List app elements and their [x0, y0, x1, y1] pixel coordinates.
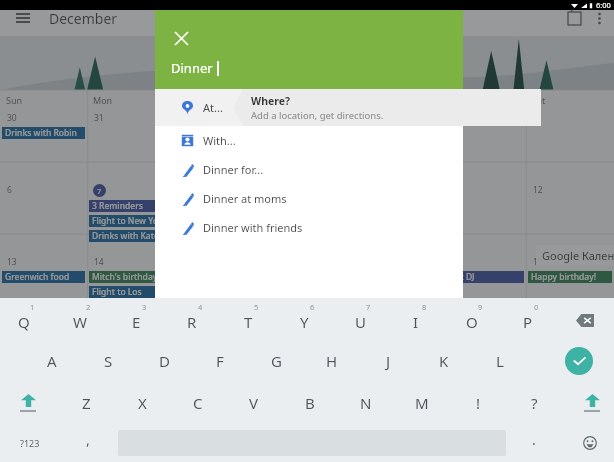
button[interactable]: With...: [155, 126, 463, 155]
staticText: B: [305, 393, 315, 413]
staticText: G: [271, 351, 282, 371]
staticText: Happy birthday!: [531, 271, 596, 283]
button[interactable]: Menu: [8, 3, 38, 33]
button[interactable]: ?123: [2, 424, 58, 462]
button[interactable]: Happy birthday!: [528, 271, 612, 283]
button[interactable]: G: [250, 340, 302, 382]
staticText: X: [138, 393, 147, 413]
button[interactable]: 3: [110, 300, 162, 340]
button[interactable]: Shift: [2, 382, 54, 424]
button[interactable]: At...: [155, 89, 463, 126]
button[interactable]: !: [452, 382, 504, 424]
button[interactable]: Flight to Los Angeles: [89, 286, 172, 298]
button[interactable]: 1: [0, 300, 50, 340]
button[interactable]: Enter: [551, 340, 607, 382]
button[interactable]: K: [418, 340, 470, 382]
button[interactable]: Close: [163, 20, 199, 56]
button[interactable]: V: [228, 382, 280, 424]
staticText: 12: [533, 184, 543, 196]
staticText: L: [496, 351, 504, 371]
button[interactable]: J: [362, 340, 414, 382]
staticText: S: [104, 351, 113, 371]
staticText: 5: [254, 302, 259, 312]
button[interactable]: X: [116, 382, 168, 424]
button[interactable]: Backspace: [562, 300, 608, 340]
button[interactable]: 3 Reminders: [89, 200, 172, 212]
button[interactable]: 2: [54, 300, 106, 340]
button[interactable]: Flight to New York: [89, 215, 172, 227]
staticText: 30: [7, 112, 17, 124]
staticText: Add a location, get directions.: [251, 109, 384, 122]
button[interactable]: N: [340, 382, 392, 424]
button[interactable]: 4: [166, 300, 218, 340]
staticText: 19: [533, 256, 543, 268]
button[interactable]: C: [172, 382, 224, 424]
button[interactable]: ?: [508, 382, 560, 424]
button[interactable]: 5: [222, 300, 274, 340]
button[interactable]: Drinks with Kate: [89, 230, 172, 242]
staticText: Where?: [251, 94, 291, 108]
button[interactable]: L: [474, 340, 526, 382]
staticText: 3 Reminders: [92, 200, 143, 212]
button[interactable]: 6: [278, 300, 330, 340]
button[interactable]: Book DJ: [440, 271, 524, 283]
button[interactable]: A: [26, 340, 78, 382]
staticText: 3: [142, 302, 147, 312]
staticText: D: [159, 351, 170, 371]
staticText: T: [244, 312, 253, 332]
staticText: Greenwich food tour: [5, 271, 85, 283]
button[interactable]: Dinner at moms: [155, 184, 463, 213]
button[interactable]: 0: [502, 300, 554, 340]
button[interactable]: Mitch's birthday: [89, 271, 172, 283]
staticText: 7: [97, 186, 102, 196]
button[interactable]: Today: [560, 4, 588, 32]
staticText: C: [193, 393, 203, 413]
button[interactable]: Hugo's vet: [264, 199, 348, 211]
staticText: ,: [86, 430, 90, 449]
button[interactable]: ,: [66, 424, 110, 462]
button[interactable]: Z: [60, 382, 112, 424]
staticText: Tue: [180, 94, 196, 106]
staticText: K: [439, 351, 449, 371]
button[interactable]: More options: [588, 7, 610, 29]
button[interactable]: 9: [446, 300, 498, 340]
button[interactable]: Emoji: [568, 424, 612, 462]
button[interactable]: B: [284, 382, 336, 424]
staticText: Flight to New York: [92, 215, 167, 227]
staticText: Flight to Los Angeles: [92, 286, 172, 298]
staticText: Google Календарь: [542, 248, 614, 263]
button[interactable]: Shift: [566, 382, 614, 424]
staticText: Z: [82, 393, 91, 413]
staticText: Q: [18, 312, 30, 332]
staticText: 31: [94, 112, 104, 124]
button[interactable]: M: [396, 382, 448, 424]
button[interactable]: 8: [390, 300, 442, 340]
staticText: Mitch's birthday: [92, 271, 158, 283]
staticText: Sat: [532, 94, 546, 106]
staticText: 8: [422, 302, 427, 312]
button[interactable]: 7: [334, 300, 386, 340]
button[interactable]: Dinner for...: [155, 155, 463, 184]
button[interactable]: Drinks with Robin: [2, 127, 85, 139]
button[interactable]: D: [138, 340, 190, 382]
button[interactable]: Greenwich food tour: [2, 271, 85, 283]
button[interactable]: H: [306, 340, 358, 382]
button[interactable]: Meet Julia: [264, 301, 348, 313]
staticText: P: [523, 312, 533, 332]
button[interactable]: S: [82, 340, 134, 382]
staticText: !: [476, 393, 481, 413]
button[interactable]: Dinner with friends: [155, 213, 463, 242]
button[interactable]: F: [194, 340, 246, 382]
staticText: A: [47, 351, 57, 371]
button[interactable]: .: [512, 424, 556, 462]
